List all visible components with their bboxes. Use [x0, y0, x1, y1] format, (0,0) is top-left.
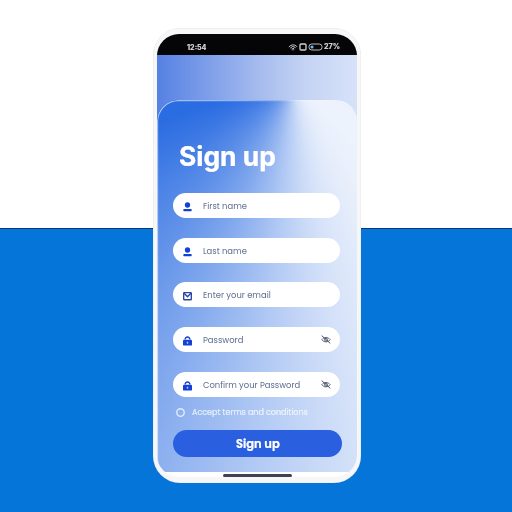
- staticText: 27%: [324, 42, 341, 51]
- button[interactable]: Show password: [321, 335, 331, 344]
- staticText: Enter your email: [203, 289, 271, 301]
- button[interactable]: Confirm your Password: [173, 372, 340, 397]
- staticText: Sign up: [236, 436, 280, 452]
- staticText: Accept terms and conditions: [192, 407, 308, 418]
- staticText: Password: [203, 334, 244, 346]
- staticText: Last name: [203, 245, 247, 257]
- button[interactable]: First name: [173, 193, 340, 218]
- button[interactable]: Last name: [173, 238, 340, 263]
- button[interactable]: Sign up: [173, 430, 342, 457]
- button[interactable]: Enter your email: [173, 282, 340, 307]
- staticText: Sign up: [179, 140, 276, 172]
- staticText: Confirm your Password: [203, 379, 301, 391]
- button[interactable]: Show password: [321, 380, 331, 389]
- button[interactable]: Password: [173, 327, 340, 352]
- button[interactable]: Accept terms and conditions: [173, 403, 340, 421]
- staticText: 12:54: [187, 43, 207, 52]
- staticText: First name: [203, 200, 247, 212]
